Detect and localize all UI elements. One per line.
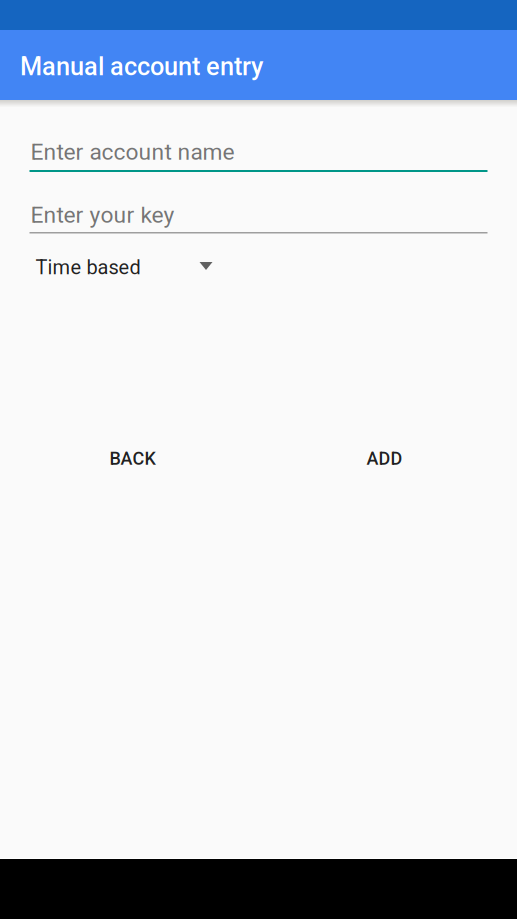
staticText: Enter account name (30, 139, 234, 165)
staticText: Time based (35, 256, 140, 279)
button[interactable]: BACK (76, 437, 189, 479)
button[interactable]: Enter your key (29, 198, 487, 233)
staticText: Enter your key (30, 202, 174, 228)
button[interactable]: ADD (328, 437, 441, 479)
staticText: ADD (366, 448, 402, 469)
staticText: Manual account entry (20, 52, 263, 81)
staticText: BACK (109, 448, 155, 469)
button[interactable]: Time based (29, 245, 226, 289)
button[interactable]: Enter account name (29, 134, 487, 172)
